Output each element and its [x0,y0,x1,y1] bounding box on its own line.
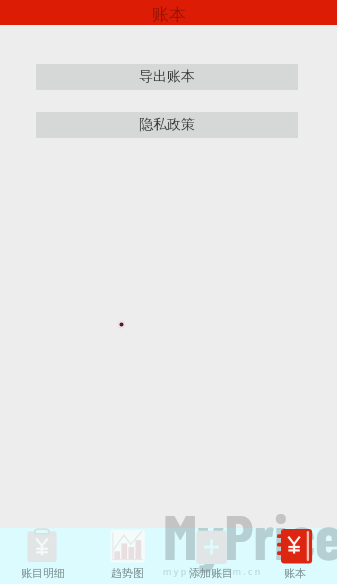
button[interactable]: 导出账本 [36,64,298,90]
button[interactable]: 隐私政策 [36,112,298,138]
button[interactable]: 账本 [0,0,337,25]
button[interactable]: 趋势图 [85,528,169,584]
staticText: 隐私政策 [139,116,195,134]
button[interactable]: 账目明细 [0,528,85,584]
button[interactable]: 账本 [253,528,337,584]
staticText: 导出账本 [139,68,195,86]
staticText: 账本 [284,566,306,580]
button[interactable]: 添加账目 [169,528,253,584]
staticText: 账目明细 [21,566,65,580]
staticText: 添加账目 [189,566,233,580]
staticText: 趋势图 [111,566,144,580]
staticText: 账本 [152,4,186,25]
